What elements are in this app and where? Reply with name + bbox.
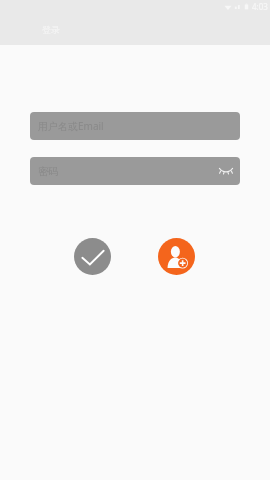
staticText: 登录 bbox=[42, 24, 60, 35]
staticText: 4:03 bbox=[252, 1, 268, 12]
other: Show password bbox=[219, 166, 233, 174]
button[interactable]: 用户名或Email bbox=[30, 112, 240, 140]
staticText: 密码 bbox=[38, 165, 58, 178]
button[interactable]: 密码 bbox=[30, 157, 240, 185]
staticText: 用户名或Email bbox=[38, 119, 104, 133]
button[interactable]: Register bbox=[158, 238, 195, 275]
button[interactable]: Login bbox=[74, 238, 111, 275]
